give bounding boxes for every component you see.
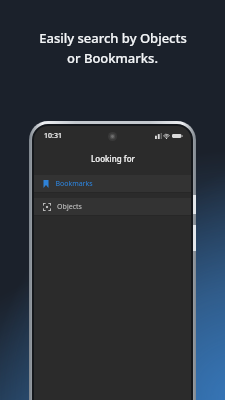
staticText: Bookmarks — [55, 179, 93, 189]
staticText: or Bookmarks. — [67, 49, 158, 67]
button[interactable]: Objects — [34, 198, 191, 215]
staticText: Objects — [57, 202, 82, 212]
staticText: 10:31 — [44, 131, 62, 141]
button[interactable]: Bookmarks — [34, 175, 191, 192]
staticText: Easily search by Objects — [39, 29, 187, 47]
staticText: Looking for — [91, 153, 135, 164]
